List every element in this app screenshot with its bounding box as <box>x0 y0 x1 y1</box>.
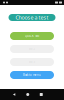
staticText: Back to menu <box>23 73 41 77</box>
staticText: Choose a test <box>15 14 48 21</box>
button[interactable]: QUICK TEST <box>10 32 54 40</box>
button[interactable]: Home <box>21 89 34 100</box>
button[interactable]: Back <box>7 89 21 100</box>
staticText: QUICK TEST <box>25 34 39 38</box>
button[interactable]: Back to menu <box>10 71 54 79</box>
button[interactable]: Recent apps <box>34 89 48 100</box>
